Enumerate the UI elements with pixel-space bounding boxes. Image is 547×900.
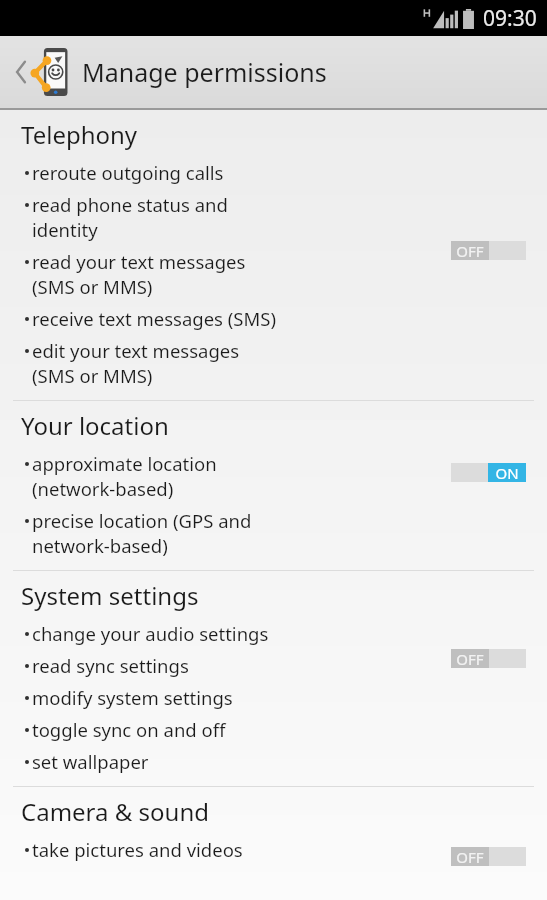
button[interactable]: Permission disabled <box>451 847 526 866</box>
staticText: Camera & sound <box>21 795 209 828</box>
staticText: System settings <box>21 579 199 612</box>
staticText: read phone status and identity <box>32 192 228 242</box>
staticText: OFF <box>456 649 484 668</box>
staticText: read sync settings <box>32 653 189 678</box>
button[interactable]: Permission disabled <box>451 649 526 668</box>
staticText: approximate location (network-based) <box>32 451 217 501</box>
staticText: toggle sync on and off <box>32 717 226 742</box>
staticText: take pictures and videos <box>32 837 243 862</box>
button[interactable]: Permission enabled <box>451 463 526 482</box>
staticText: modify system settings <box>32 685 233 710</box>
staticText: Telephony <box>21 118 138 151</box>
staticText: Manage permissions <box>82 55 327 89</box>
button[interactable]: Permission disabled <box>451 241 526 260</box>
staticText: receive text messages (SMS) <box>32 306 276 331</box>
button[interactable]: Navigate up <box>0 36 345 108</box>
staticText: Your location <box>21 409 169 442</box>
staticText: OFF <box>456 241 484 260</box>
staticText: reroute outgoing calls <box>32 160 224 185</box>
staticText: 09:30 <box>483 4 537 33</box>
staticText: read your text messages (SMS or MMS) <box>32 249 246 299</box>
staticText: edit your text messages (SMS or MMS) <box>32 338 240 388</box>
other: Navigate up <box>14 57 28 87</box>
staticText: set wallpaper <box>32 749 149 774</box>
staticText: ON <box>495 463 519 482</box>
staticText: change your audio settings <box>32 621 269 646</box>
staticText: precise location (GPS and network-based) <box>32 508 252 558</box>
staticText: OFF <box>456 847 484 866</box>
